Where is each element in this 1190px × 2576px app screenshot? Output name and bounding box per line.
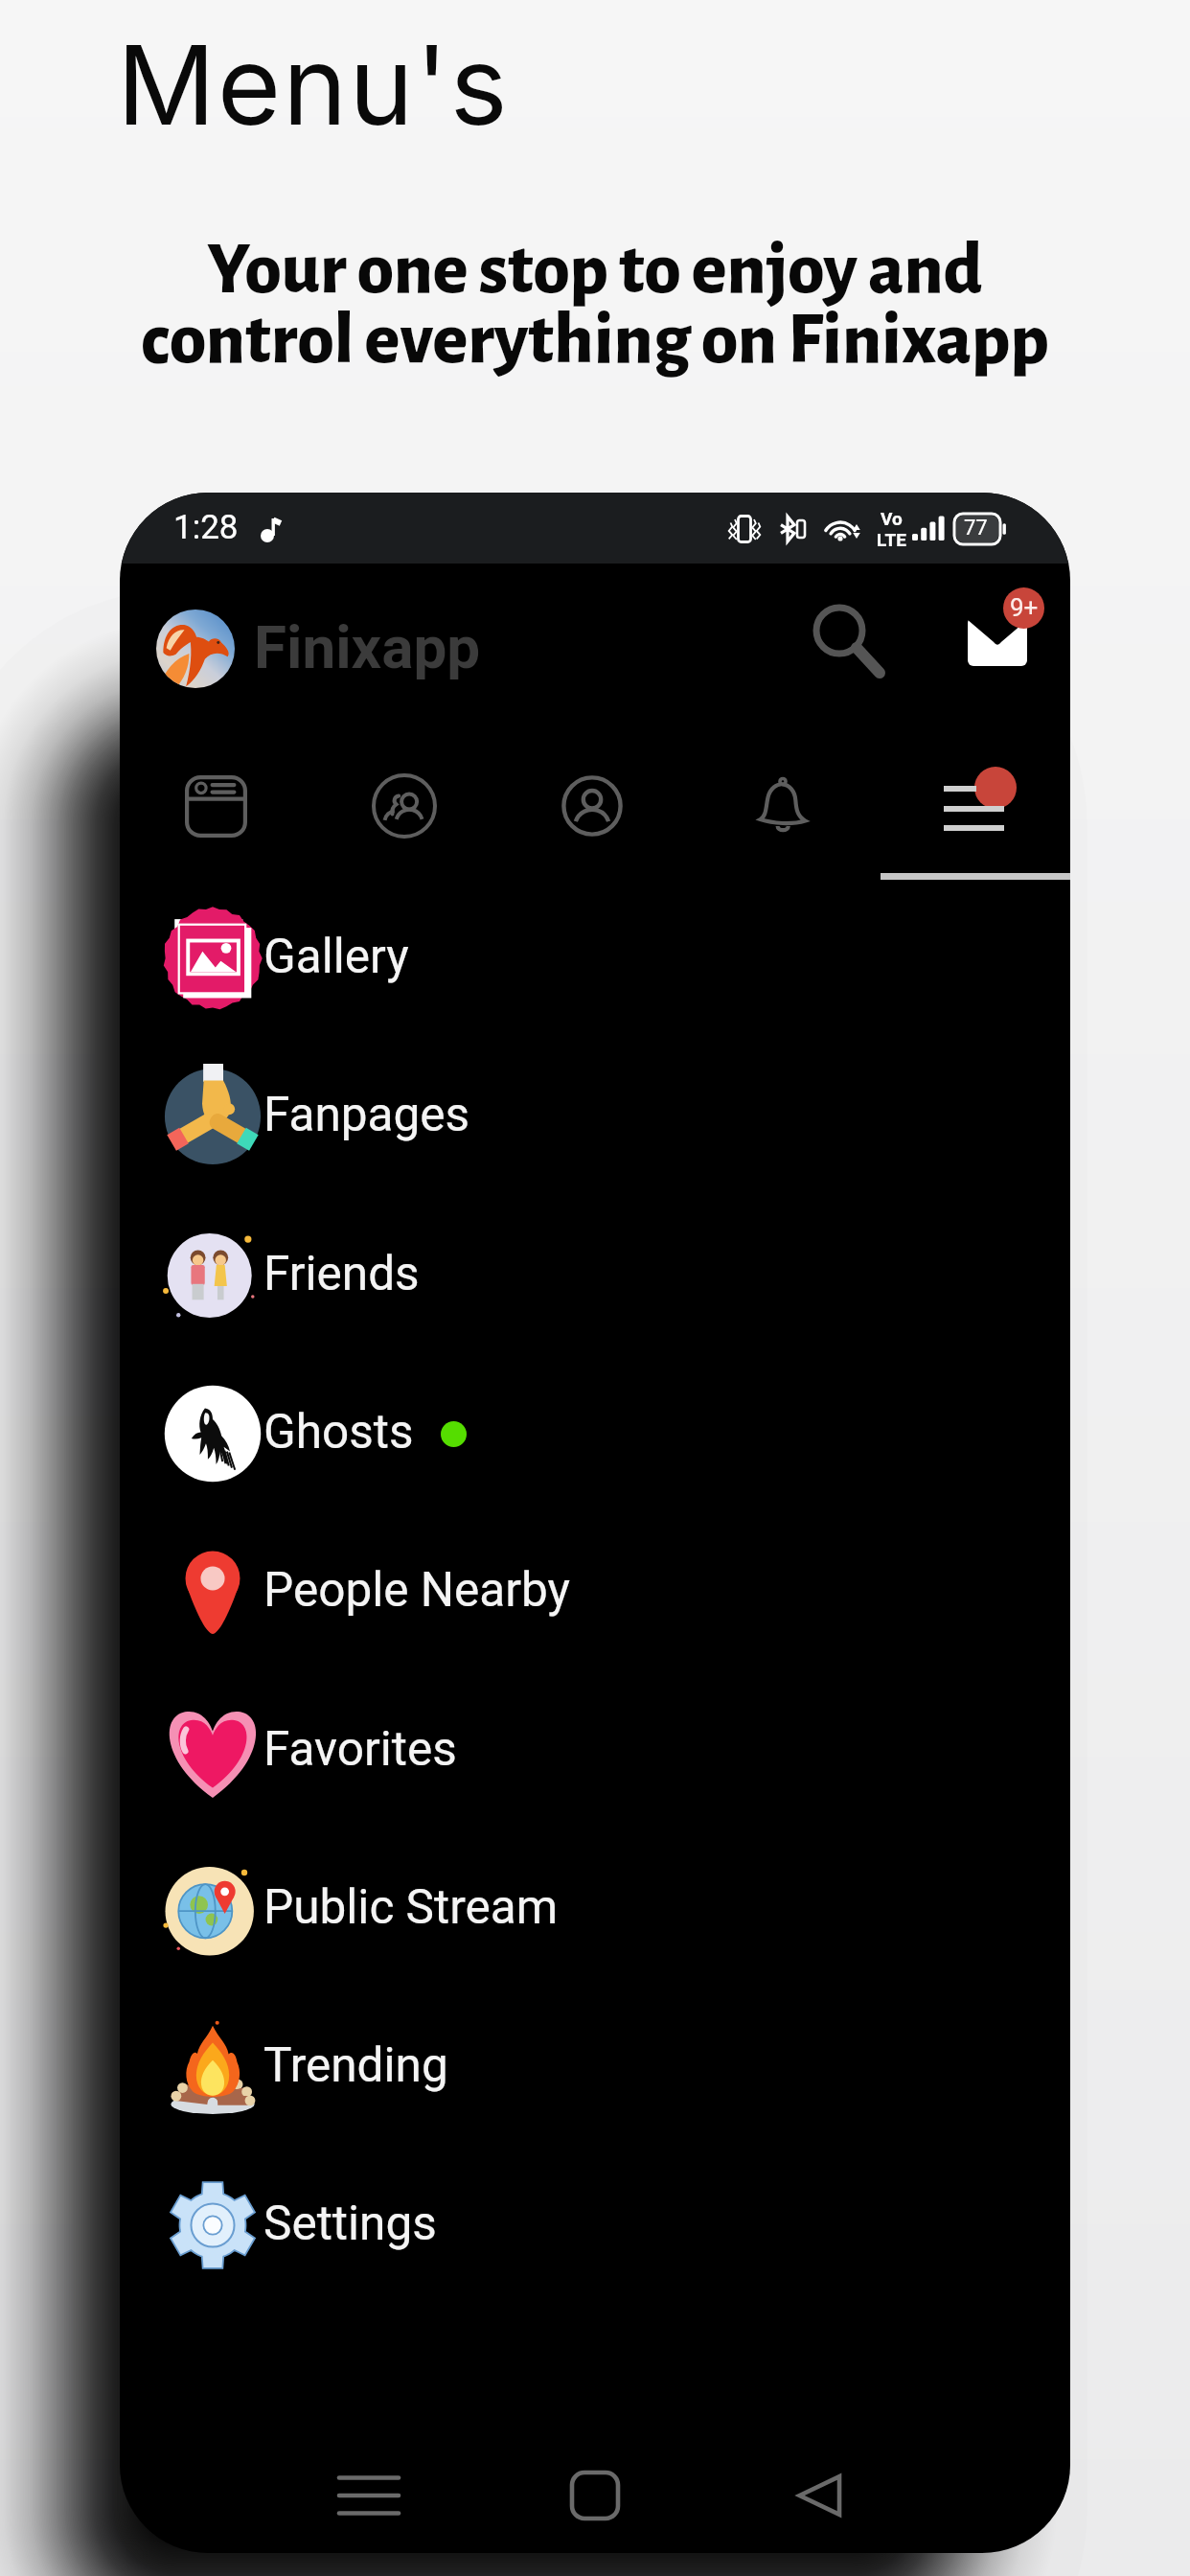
button[interactable]: Gallery — [120, 880, 1070, 1037]
staticText: Finixapp — [254, 612, 481, 682]
button[interactable]: Friends — [120, 1197, 1070, 1354]
button[interactable]: Finixapp — [156, 609, 481, 689]
staticText: Menu's — [117, 19, 510, 151]
staticText: 9+ — [1010, 593, 1039, 622]
staticText: People Nearby — [263, 1562, 570, 1618]
staticText: Ghosts — [263, 1404, 414, 1460]
staticText: Fanpages — [263, 1087, 470, 1142]
staticText: Vo — [881, 508, 903, 529]
button[interactable]: Ghosts — [120, 1355, 1070, 1512]
button[interactable]: Notifications — [689, 729, 877, 883]
button[interactable]: Fanpages — [120, 1038, 1070, 1195]
button[interactable]: Groups — [310, 729, 498, 883]
button[interactable]: Settings — [120, 2147, 1070, 2304]
staticText: Settings — [263, 2196, 437, 2251]
button[interactable]: Profile — [498, 729, 686, 883]
button[interactable]: Recents — [315, 2442, 423, 2549]
staticText: Trending — [263, 2037, 448, 2093]
staticText: Public Stream — [263, 1879, 559, 1935]
staticText: Friends — [263, 1246, 420, 1301]
staticText: Favorites — [263, 1721, 457, 1777]
button[interactable]: Search — [778, 571, 897, 690]
button[interactable]: People Nearby — [120, 1513, 1070, 1670]
button[interactable]: Home — [541, 2442, 649, 2549]
button[interactable]: Menu — [879, 729, 1066, 883]
staticText: 77 — [964, 516, 988, 540]
button[interactable]: Feed — [122, 729, 309, 883]
staticText: Your one stop to enjoy and control every… — [141, 233, 1049, 377]
button[interactable]: Trending — [120, 1989, 1070, 2146]
button[interactable]: Public Stream — [120, 1830, 1070, 1988]
staticText: 1:28 — [173, 508, 239, 547]
staticText: LTE — [877, 529, 906, 550]
button[interactable]: Favorites — [120, 1672, 1070, 1829]
staticText: Gallery — [263, 929, 409, 984]
button[interactable]: Back — [767, 2442, 875, 2549]
button[interactable]: Messages — [944, 585, 1059, 680]
